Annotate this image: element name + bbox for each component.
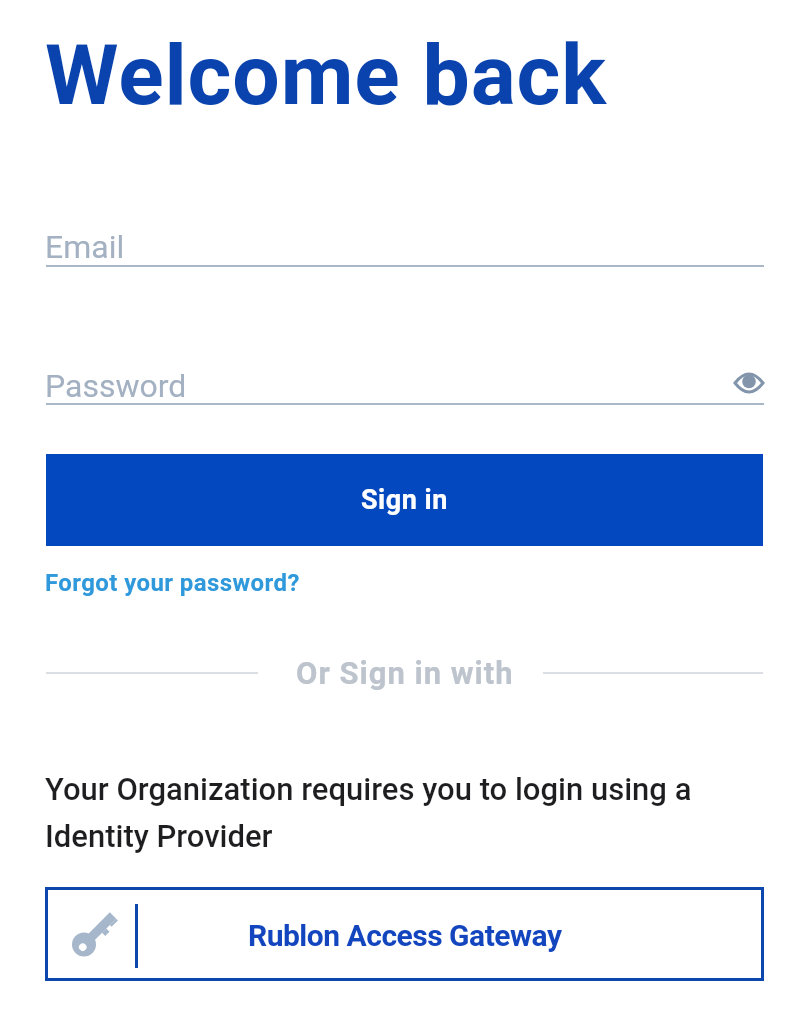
button[interactable] bbox=[734, 372, 764, 394]
staticText: Your Organization requires you to login … bbox=[45, 771, 692, 807]
staticText: Welcome back bbox=[45, 26, 608, 124]
staticText: Identity Provider bbox=[45, 818, 273, 854]
staticText: Email bbox=[45, 228, 125, 266]
button[interactable]: Rublon Access Gateway bbox=[45, 887, 764, 981]
button[interactable]: Forgot your password? bbox=[45, 569, 300, 597]
staticText: Rublon Access Gateway bbox=[248, 918, 562, 953]
staticText: Password bbox=[45, 367, 187, 405]
button[interactable]: Sign in bbox=[46, 454, 763, 546]
staticText: Or Sign in with bbox=[296, 655, 514, 691]
staticText: Sign in bbox=[361, 484, 448, 516]
